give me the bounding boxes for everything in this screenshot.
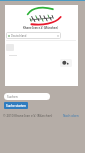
staticText: Suche starten	[6, 104, 26, 108]
staticText: Suchen	[7, 95, 18, 99]
button[interactable]: Nach oben	[63, 114, 79, 118]
staticText: © 2010 Khane Iran e.V. (München)	[3, 114, 53, 118]
button[interactable]: Suchen	[4, 93, 50, 100]
staticText: Khane Iran e.V. (München)	[23, 26, 59, 30]
button[interactable]: Deutschland	[6, 32, 61, 39]
button[interactable]: Suche starten	[4, 102, 28, 109]
staticText: Deutschland	[11, 34, 27, 38]
button[interactable]: Optionen	[60, 59, 72, 67]
